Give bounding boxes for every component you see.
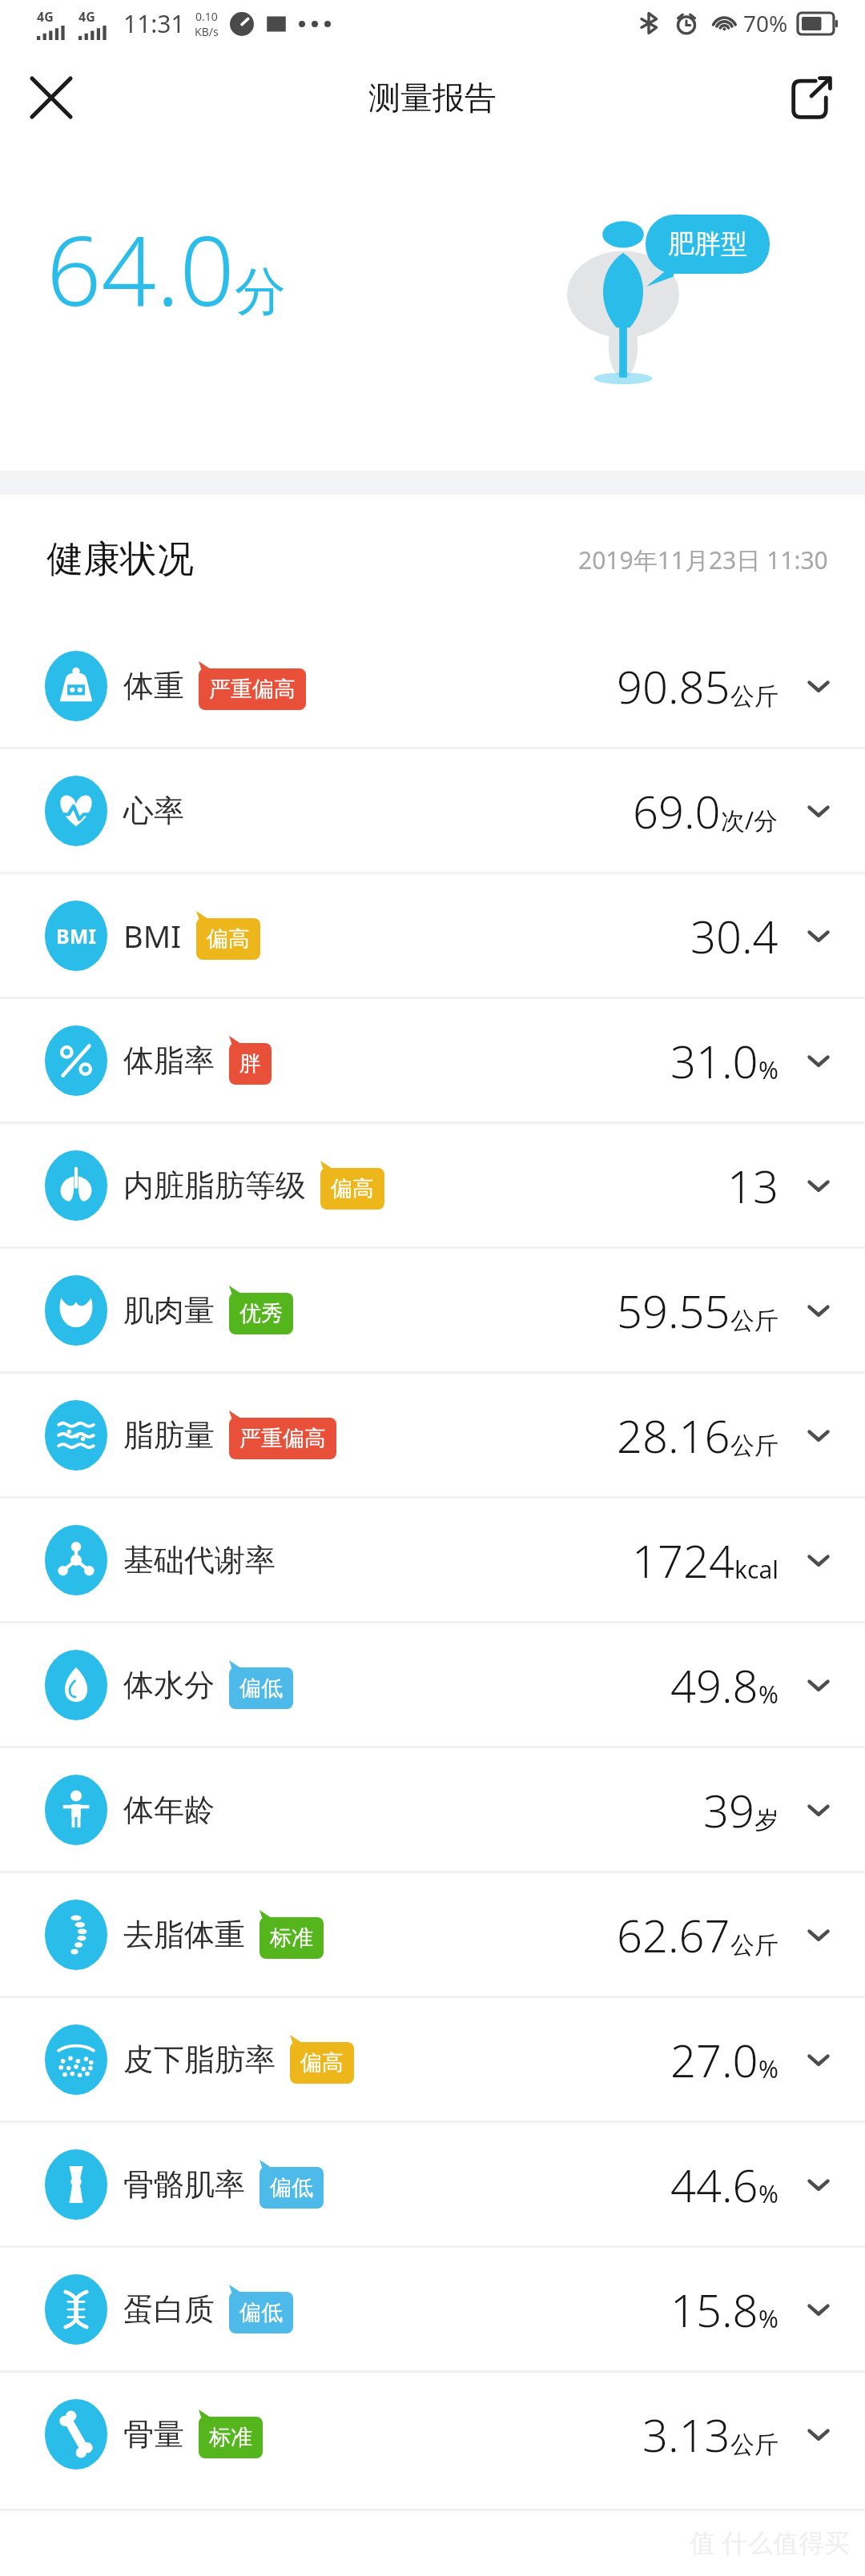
- button[interactable]: 骨骼肌率: [0, 2123, 865, 2245]
- staticText: 偏高: [331, 1175, 374, 1202]
- staticText: 偏低: [239, 1675, 283, 1702]
- button[interactable]: 肌肉量: [0, 1249, 865, 1371]
- staticText: 体脂率: [123, 1041, 215, 1080]
- button[interactable]: 去脂体重: [0, 1873, 865, 1996]
- staticText: 次/分: [721, 804, 778, 837]
- button[interactable]: BMI: [0, 874, 865, 997]
- staticText: 15.8: [670, 2279, 758, 2340]
- staticText: 13: [727, 1155, 778, 1216]
- staticText: 2019年11月23日 11:30: [578, 544, 828, 576]
- button[interactable]: 心率: [0, 749, 865, 872]
- staticText: 体水分: [123, 1666, 215, 1704]
- staticText: 59.55: [617, 1280, 730, 1341]
- button[interactable]: Close: [14, 61, 88, 134]
- button[interactable]: 内脏脂肪等级: [0, 1124, 865, 1246]
- staticText: 偏高: [300, 2049, 344, 2076]
- staticText: 49.8: [670, 1655, 758, 1715]
- staticText: 11:31: [123, 7, 185, 40]
- staticText: BMI: [123, 915, 182, 957]
- staticText: 胖: [239, 1050, 261, 1077]
- staticText: 30.4: [690, 905, 778, 966]
- staticText: 69.0: [633, 780, 721, 841]
- staticText: 骨骼肌率: [123, 2165, 245, 2204]
- staticText: 皮下脂肪率: [123, 2040, 276, 2079]
- staticText: %: [758, 1053, 778, 1086]
- staticText: 严重偏高: [239, 1425, 326, 1452]
- staticText: 公斤: [730, 1306, 778, 1336]
- staticText: 肌肉量: [123, 1291, 215, 1330]
- staticText: 27.0: [670, 2029, 758, 2090]
- staticText: 公斤: [730, 1930, 778, 1960]
- staticText: 90.85: [617, 656, 730, 716]
- staticText: 28.16: [617, 1405, 730, 1466]
- staticText: 基础代谢率: [123, 1541, 276, 1579]
- staticText: %: [758, 2302, 778, 2335]
- staticText: 肥胖型: [668, 227, 747, 261]
- staticText: 4G: [78, 8, 95, 26]
- button[interactable]: 骨量: [0, 2373, 865, 2495]
- staticText: 内脏脂肪等级: [123, 1166, 306, 1205]
- button[interactable]: Share: [774, 61, 847, 134]
- button[interactable]: 体脂率: [0, 999, 865, 1121]
- button[interactable]: 基础代谢率: [0, 1499, 865, 1621]
- staticText: 体年龄: [123, 1791, 215, 1829]
- staticText: 偏低: [239, 2299, 283, 2326]
- staticText: 公斤: [730, 2430, 778, 2460]
- staticText: KB/s: [195, 24, 219, 39]
- staticText: 70%: [743, 8, 788, 38]
- staticText: 标准: [209, 2424, 252, 2451]
- staticText: 健康状况: [46, 536, 194, 583]
- button[interactable]: 脂肪量: [0, 1374, 865, 1496]
- staticText: 体重: [123, 667, 184, 705]
- staticText: 严重偏高: [209, 676, 296, 703]
- staticText: 岁: [754, 1805, 778, 1836]
- button[interactable]: 体水分: [0, 1623, 865, 1746]
- staticText: 39: [703, 1780, 754, 1840]
- staticText: 偏高: [207, 925, 250, 953]
- staticText: 偏低: [270, 2174, 313, 2201]
- staticText: 测量报告: [368, 78, 497, 118]
- staticText: 值 什么值得买: [690, 2525, 851, 2560]
- staticText: 4G: [37, 8, 54, 26]
- staticText: 62.67: [617, 1904, 730, 1965]
- staticText: 31.0: [670, 1030, 758, 1091]
- staticText: 骨量: [123, 2415, 184, 2454]
- staticText: BMI: [56, 922, 96, 949]
- staticText: 64.0: [46, 203, 235, 334]
- staticText: %: [758, 1678, 778, 1711]
- staticText: 去脂体重: [123, 1916, 245, 1954]
- staticText: 蛋白质: [123, 2290, 215, 2329]
- button[interactable]: 皮下脂肪率: [0, 1998, 865, 2121]
- staticText: 标准: [270, 1924, 313, 1952]
- staticText: 44.6: [670, 2154, 758, 2215]
- staticText: 分: [235, 259, 286, 324]
- staticText: 公斤: [730, 681, 778, 712]
- button[interactable]: 体年龄: [0, 1748, 865, 1871]
- staticText: %: [758, 2177, 778, 2210]
- staticText: 脂肪量: [123, 1416, 215, 1455]
- button[interactable]: 蛋白质: [0, 2248, 865, 2370]
- staticText: 0.10: [195, 9, 218, 24]
- staticText: 公斤: [730, 1430, 778, 1461]
- staticText: kcal: [734, 1553, 778, 1586]
- staticText: 心率: [123, 792, 184, 830]
- staticText: 优秀: [239, 1300, 283, 1327]
- staticText: %: [758, 2052, 778, 2085]
- button[interactable]: 体重: [0, 624, 865, 747]
- staticText: 3.13: [642, 2404, 730, 2465]
- staticText: 1724: [632, 1530, 734, 1591]
